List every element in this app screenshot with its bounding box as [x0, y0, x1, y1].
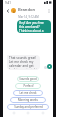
- button[interactable]: Home: [24, 109, 32, 117]
- button[interactable]: Let me check: [13, 90, 43, 96]
- staticText: Mar 14, 9:12 AM: [18, 15, 39, 19]
- button[interactable]: Back: [4, 7, 11, 14]
- button[interactable]: Hey! Are you free this weekend? Thinking…: [17, 20, 51, 33]
- staticText: Brandon: [18, 7, 36, 13]
- staticText: Morning works: [18, 98, 38, 102]
- button[interactable]: More options: [45, 7, 52, 14]
- staticText: Sounds good: [19, 77, 37, 81]
- staticText: 9:41: [5, 1, 11, 5]
- button[interactable]: That sounds great! Let me check my calen…: [7, 55, 40, 70]
- button[interactable]: Sounds good: [17, 76, 39, 82]
- staticText: Perfect!: [23, 84, 34, 88]
- button[interactable]: Morning works: [10, 97, 46, 103]
- button[interactable]: Perfect!: [15, 83, 41, 89]
- button[interactable]: Recents: [39, 109, 47, 117]
- button[interactable]: Sunday and preferred: [7, 104, 49, 110]
- staticText: Let me check: [19, 91, 37, 95]
- staticText: That sounds great! Let me check my calen…: [9, 56, 38, 69]
- staticText: Hey! Are you free this weekend? Thinking…: [19, 21, 49, 32]
- button[interactable]: Reply: [47, 64, 52, 69]
- button[interactable]: Back: [10, 109, 18, 117]
- staticText: Sunday and preferred: [14, 105, 43, 109]
